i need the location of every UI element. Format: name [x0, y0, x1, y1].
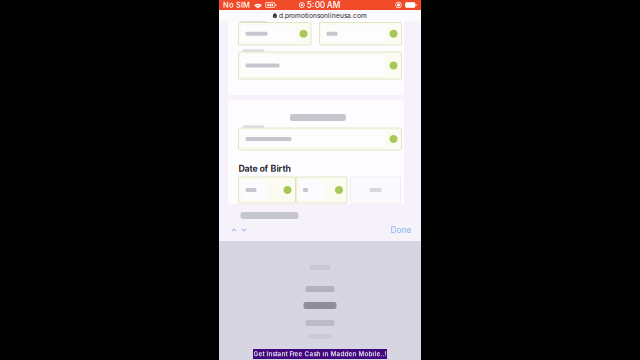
button[interactable]: [238, 128, 401, 150]
staticText: No SIM: [223, 0, 250, 9]
button[interactable]: [238, 22, 311, 45]
button[interactable]: Previous or next field: [226, 224, 252, 236]
staticText: Done: [390, 225, 411, 235]
button[interactable]: [296, 177, 347, 203]
staticText: Date of Birth: [238, 163, 290, 174]
button[interactable]: d.promotionsonlineusa.com: [219, 10, 421, 21]
button[interactable]: [319, 22, 401, 45]
button[interactable]: Done: [387, 224, 415, 236]
button[interactable]: [350, 177, 400, 203]
staticText: Get Instant Free Cash in Madden Mobile..…: [253, 350, 386, 358]
staticText: d.promotionsonlineusa.com: [279, 11, 367, 19]
button[interactable]: [238, 52, 401, 79]
staticText: 5:00 AM: [307, 0, 341, 10]
button[interactable]: [238, 177, 295, 203]
